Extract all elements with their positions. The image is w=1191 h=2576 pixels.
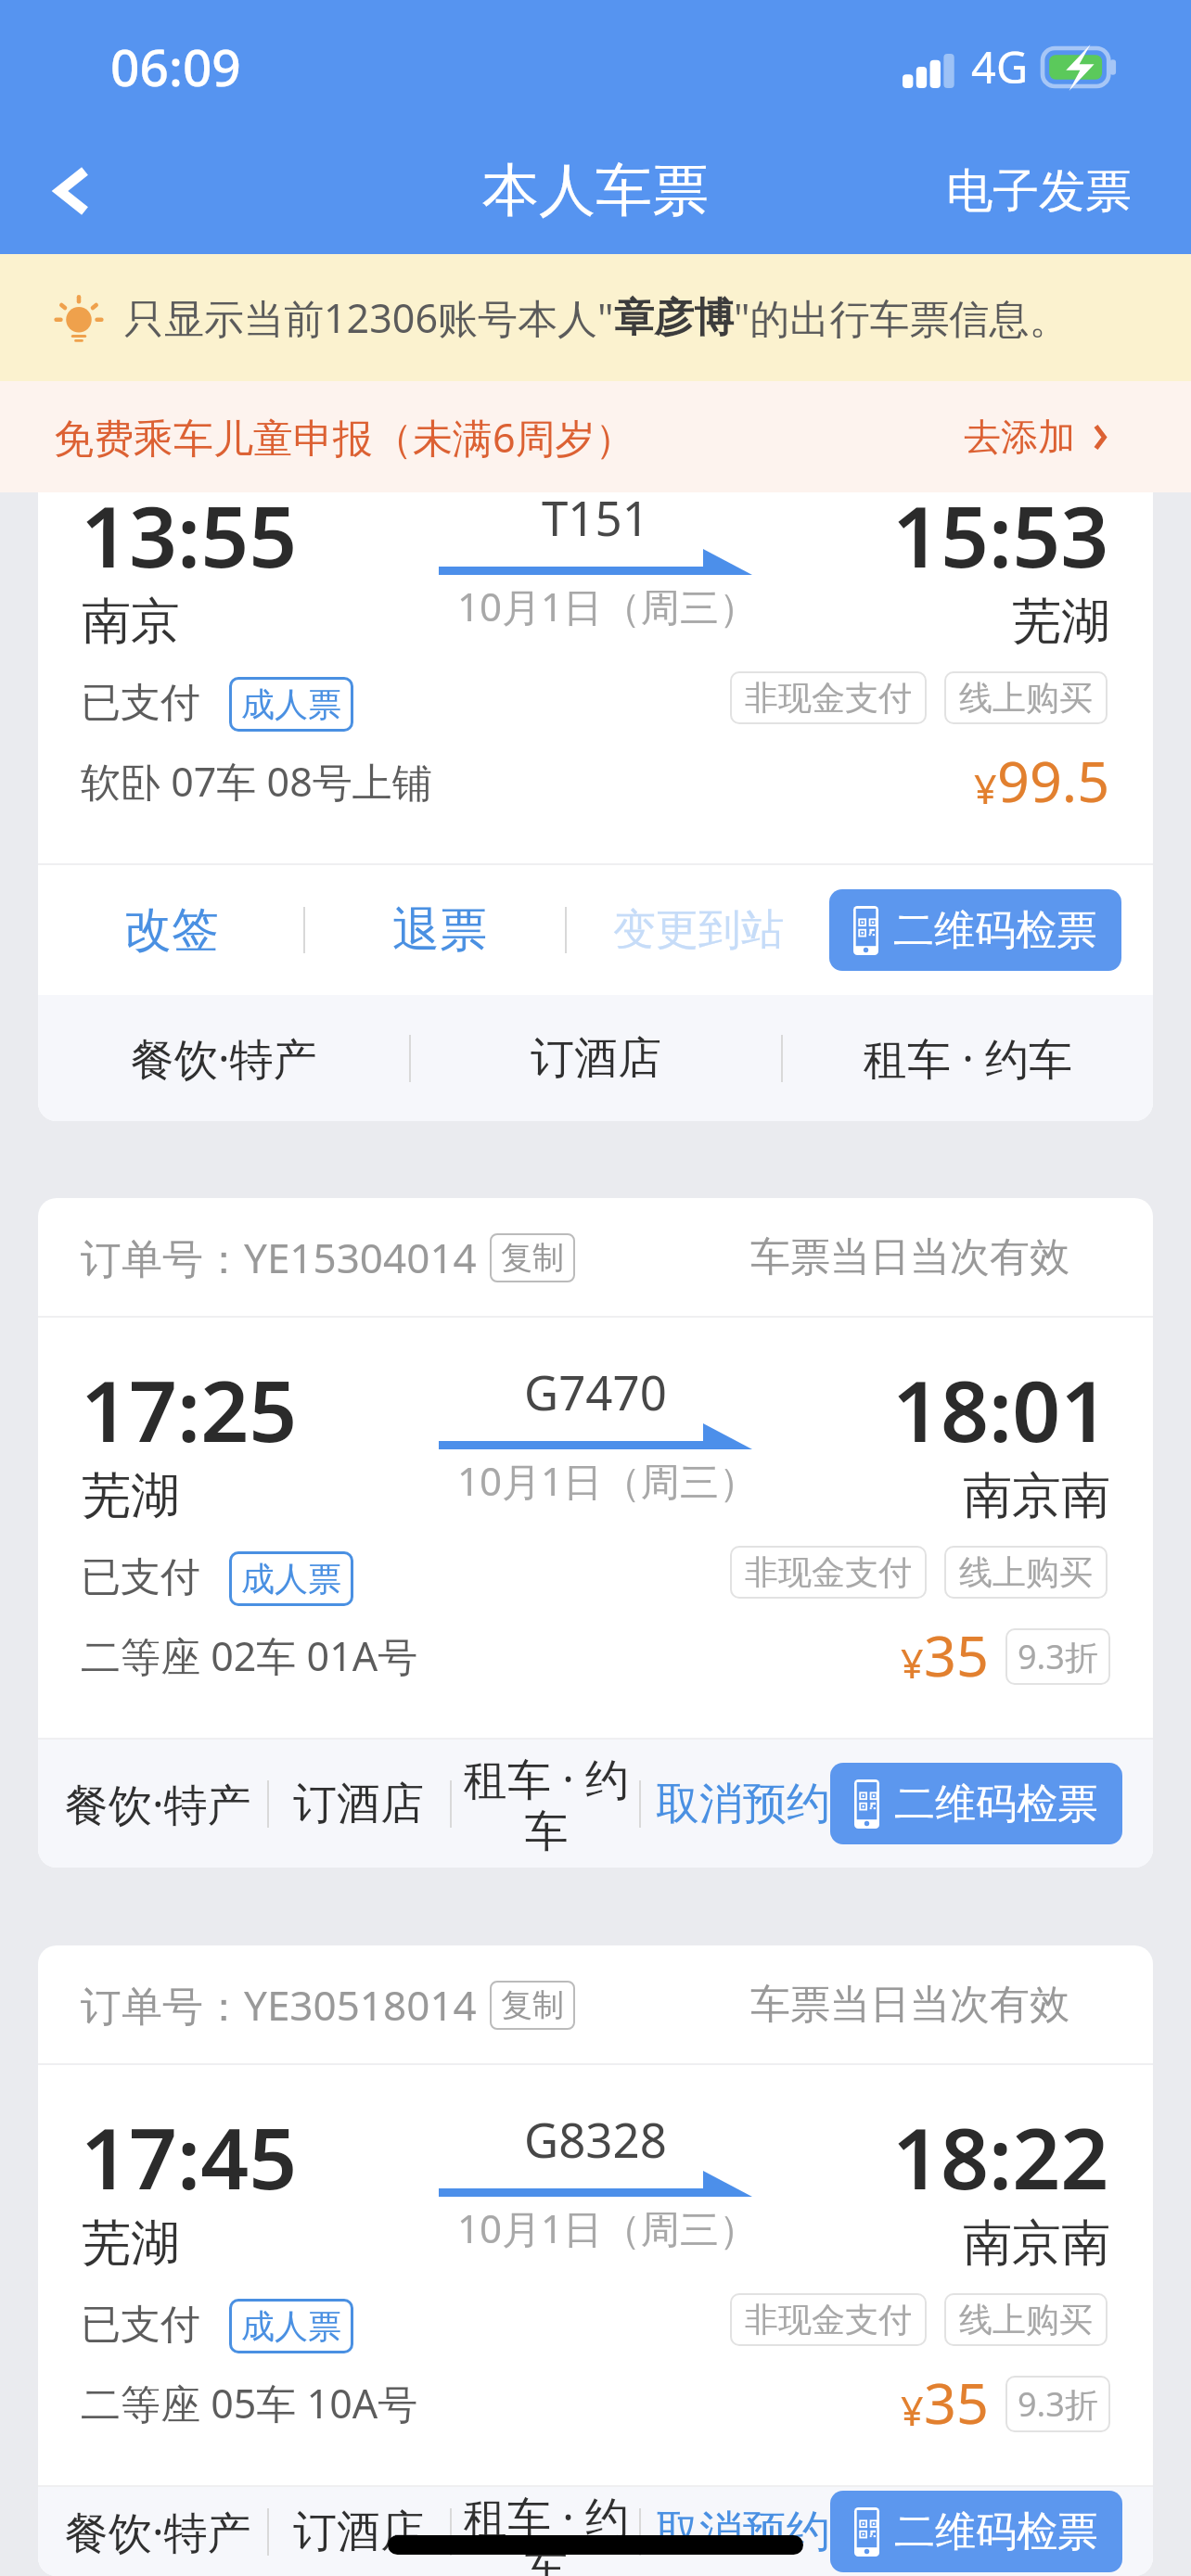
staticText: 成人票 [241,2305,341,2347]
button[interactable]: 二维码检票 [829,889,1121,971]
staticText: 变更到站 [613,903,784,957]
button[interactable]: 餐饮·特产 [65,2502,251,2561]
button[interactable]: 租车 · 约车 [460,2487,633,2576]
staticText: 15:53 [892,492,1109,593]
staticText: 餐饮·特产 [131,1028,317,1088]
button[interactable]: 二维码检票 [830,1763,1122,1844]
button[interactable]: 复制 [490,1981,575,2030]
staticText: 线上购买 [959,2299,1093,2340]
staticText: 餐饮·特产 [65,1774,251,1833]
staticText: "的出行车票信息。 [734,290,1069,345]
staticText: 电子发票 [946,162,1132,221]
staticText: 车票当日当次有效 [750,1980,1069,2030]
staticText: 06:09 [110,32,241,101]
staticText: 复制 [501,1238,564,1278]
staticText: 租车 · 约车 [460,2487,633,2576]
staticText: 订单号：YE15304014 [81,1230,477,1285]
button[interactable]: Back [26,143,119,236]
staticText: 二维码检票 [894,1779,1098,1830]
staticText: 非现金支付 [745,1551,912,1593]
staticText: 订酒店 [293,2505,424,2559]
staticText: 软卧 07车 08号上铺 [81,754,432,809]
staticText: 17:25 [81,1352,298,1467]
button[interactable]: 餐饮·特产 [65,1774,251,1833]
button[interactable]: 复制 [490,1233,575,1282]
staticText: 芜湖 [1012,591,1110,653]
staticText: 复制 [501,1985,564,2025]
button[interactable]: 订酒店 [411,1031,781,1086]
staticText: 南京南 [963,1465,1110,1527]
staticText: T151 [542,492,649,549]
staticText: 线上购买 [959,677,1093,719]
staticText: 99.5 [997,742,1110,819]
staticText: 改签 [124,900,219,960]
staticText: 订酒店 [293,1777,424,1831]
button[interactable]: 取消预约 [656,2505,830,2559]
staticText: 二等座 02车 01A号 [81,1628,418,1683]
staticText: 只显示当前12306账号本人" [124,290,614,345]
staticText: 二等座 05车 10A号 [81,2376,418,2430]
staticText: 成人票 [241,683,341,725]
button[interactable]: 退票 [374,880,506,980]
staticText: 二维码检票 [894,2506,1098,2557]
staticText: 餐饮·特产 [65,2502,251,2561]
staticText: ¥ [974,761,997,816]
staticText: 10月1日（周三） [457,580,759,632]
staticText: 已支付 [81,2300,200,2350]
button[interactable]: 订酒店 [293,1777,424,1831]
staticText: 南京南 [963,2213,1110,2275]
staticText: 非现金支付 [745,2299,912,2340]
button[interactable]: 租车 · 约车 [783,1028,1153,1088]
button[interactable]: 餐饮·特产 [38,1028,409,1088]
staticText: 免费乘车儿童申报（未满6周岁） [54,410,635,465]
button[interactable]: 电子发票 [942,159,1135,224]
staticText: 4G [971,37,1029,96]
staticText: 18:22 [892,2099,1109,2214]
button[interactable]: 改签 [106,880,237,980]
staticText: 订酒店 [531,1031,661,1086]
staticText: 去添加 [964,414,1075,460]
staticText: 17:45 [81,2099,298,2214]
staticText: 9.3折 [1018,1634,1098,1679]
staticText: ¥ [901,2383,924,2438]
button[interactable]: 免费乘车儿童申报（未满6周岁） [0,381,1191,492]
staticText: G8328 [524,2107,667,2171]
staticText: 9.3折 [1018,2381,1098,2427]
button[interactable]: 租车 · 约车 [460,1749,633,1859]
staticText: 10月1日（周三） [457,2201,759,2254]
staticText: G7470 [524,1359,667,1423]
staticText: 已支付 [81,1552,200,1602]
staticText: 本人车票 [482,155,709,226]
staticText: 租车 · 约车 [864,1028,1073,1088]
staticText: 芜湖 [82,1465,180,1527]
button[interactable]: 二维码检票 [830,2491,1122,2572]
staticText: 南京 [82,591,180,653]
staticText: 二维码检票 [893,905,1097,956]
staticText: 非现金支付 [745,677,912,719]
button[interactable]: 订酒店 [293,2505,424,2559]
staticText: 退票 [392,900,487,960]
staticText: 章彦博 [614,293,734,343]
staticText: 线上购买 [959,1551,1093,1593]
button[interactable]: 取消预约 [656,1777,830,1831]
staticText: 取消预约 [656,1777,830,1831]
staticText: 13:55 [81,492,298,593]
staticText: 35 [924,1616,989,1693]
button[interactable]: 变更到站 [595,883,802,977]
staticText: 已支付 [81,678,200,728]
staticText: 成人票 [241,1558,341,1600]
staticText: 取消预约 [656,2505,830,2559]
staticText: 订单号：YE30518014 [81,1977,477,2033]
staticText: 10月1日（周三） [457,1454,759,1507]
staticText: 18:01 [892,1352,1109,1467]
staticText: 35 [924,2364,989,2441]
staticText: 芜湖 [82,2213,180,2275]
staticText: 车票当日当次有效 [750,1232,1069,1282]
staticText: ¥ [901,1636,924,1690]
staticText: 租车 · 约车 [460,1749,633,1859]
